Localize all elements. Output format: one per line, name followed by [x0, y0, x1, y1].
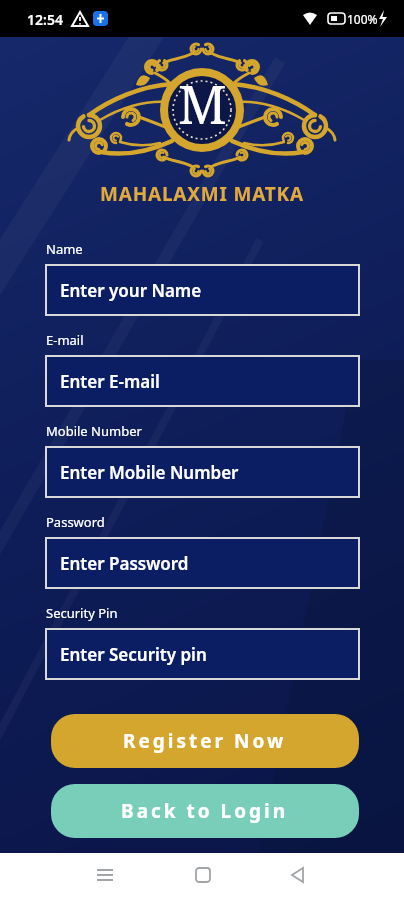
button[interactable]: Enter your Name: [60, 264, 360, 316]
staticText: Security Pin: [46, 604, 118, 622]
staticText: Back to Login: [121, 798, 289, 824]
staticText: Enter your Name: [60, 279, 202, 302]
button[interactable]: Enter Security pin: [60, 628, 360, 680]
staticText: Register Now: [123, 728, 287, 754]
staticText: Name: [46, 240, 83, 258]
staticText: Enter Password: [60, 552, 189, 575]
staticText: 100%: [347, 11, 378, 27]
staticText: Enter Security pin: [60, 643, 207, 666]
button[interactable]: Back to Login: [51, 784, 359, 838]
button[interactable]: [182, 861, 222, 893]
staticText: 12:54: [27, 10, 63, 29]
staticText: E-mail: [46, 331, 84, 349]
button[interactable]: Enter Mobile Number: [60, 446, 360, 498]
staticText: M: [178, 68, 227, 139]
staticText: Mobile Number: [46, 422, 142, 440]
button[interactable]: Enter Password: [60, 537, 360, 589]
staticText: Password: [46, 513, 105, 531]
button[interactable]: [278, 861, 318, 893]
button[interactable]: Enter E-mail: [60, 355, 360, 407]
staticText: Enter E-mail: [60, 370, 160, 393]
staticText: Enter Mobile Number: [60, 461, 239, 484]
staticText: MAHALAXMI MATKA: [100, 181, 304, 207]
button[interactable]: [86, 861, 126, 893]
button[interactable]: Register Now: [51, 714, 359, 768]
